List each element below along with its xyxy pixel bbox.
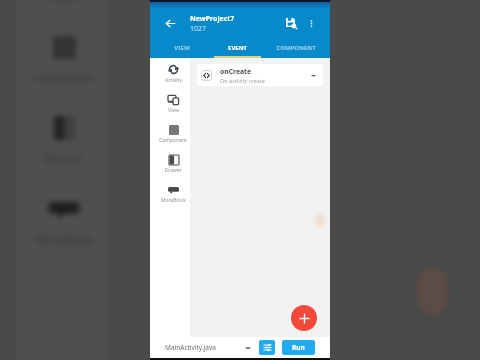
staticText: onCreate — [220, 67, 252, 76]
button[interactable]: EVENT — [214, 38, 261, 58]
button[interactable]: onCreate — [197, 64, 323, 86]
button[interactable]: COMPONENT — [261, 38, 330, 58]
staticText: MoreBlock — [161, 197, 186, 204]
staticText: Drawer — [164, 167, 182, 174]
button[interactable]: VIEW — [150, 38, 214, 58]
button[interactable]: Component — [150, 118, 190, 148]
button[interactable]: More options — [301, 9, 321, 38]
button[interactable]: Back — [159, 9, 182, 38]
staticText: NewProject7 — [190, 14, 235, 24]
staticText: COMPONENT — [276, 44, 316, 52]
staticText: View — [168, 107, 179, 114]
staticText: 1027 — [190, 24, 207, 34]
staticText: VIEW — [174, 44, 190, 52]
staticText: On activity create — [220, 77, 265, 84]
button[interactable]: Drawer — [150, 148, 190, 178]
button[interactable]: Save project — [280, 9, 302, 38]
button[interactable]: View — [150, 88, 190, 118]
button[interactable]: Activity — [150, 58, 190, 88]
button[interactable]: MoreBlock — [150, 178, 190, 208]
button[interactable]: Project settings — [259, 340, 275, 355]
staticText: Run — [292, 343, 305, 352]
staticText: Component — [159, 137, 187, 144]
staticText: MainActivity.java — [165, 343, 216, 352]
staticText: EVENT — [228, 44, 247, 52]
button[interactable]: MainActivity.java — [165, 337, 251, 358]
button[interactable]: Run — [282, 340, 315, 355]
button[interactable]: Add event — [291, 305, 317, 331]
staticText: Activity — [165, 77, 182, 84]
